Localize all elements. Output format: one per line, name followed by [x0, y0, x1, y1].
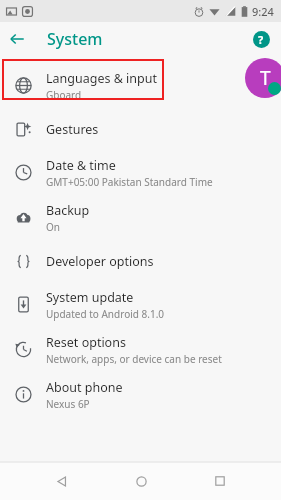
button[interactable]: System update [0, 282, 281, 327]
staticText: Network, apps, or device can be reset [46, 352, 222, 366]
button[interactable]: About phone [0, 372, 281, 417]
staticText: GMT+05:00 Pakistan Standard Time [46, 175, 213, 189]
button[interactable]: Recent apps [202, 463, 238, 499]
button[interactable]: Languages & input [0, 63, 281, 108]
staticText: System [47, 28, 103, 50]
button[interactable]: Back [43, 463, 79, 499]
staticText: About phone [46, 379, 123, 396]
staticText: Updated to Android 8.1.0 [46, 307, 165, 321]
button[interactable]: Back [0, 22, 34, 56]
staticText: Backup [46, 202, 90, 219]
staticText: 9:24 [252, 4, 274, 19]
staticText: System update [46, 289, 134, 306]
staticText: On [46, 220, 60, 234]
button[interactable]: Account [245, 58, 281, 98]
button[interactable]: Date & time [0, 150, 281, 195]
staticText: T [260, 65, 271, 91]
staticText: Developer options [46, 253, 154, 270]
staticText: Date & time [46, 157, 116, 174]
staticText: ? [258, 32, 264, 47]
button[interactable]: Reset options [0, 327, 281, 372]
staticText: Reset options [46, 334, 126, 351]
staticText: Gestures [46, 121, 99, 138]
staticText: Gboard [46, 88, 82, 102]
button[interactable]: Help [247, 25, 275, 53]
button[interactable]: Backup [0, 195, 281, 240]
button[interactable]: Developer options [0, 240, 281, 282]
staticText: Nexus 6P [46, 397, 90, 411]
button[interactable]: Gestures [0, 108, 281, 150]
staticText: Languages & input [46, 70, 157, 87]
button[interactable]: Home [123, 463, 159, 499]
